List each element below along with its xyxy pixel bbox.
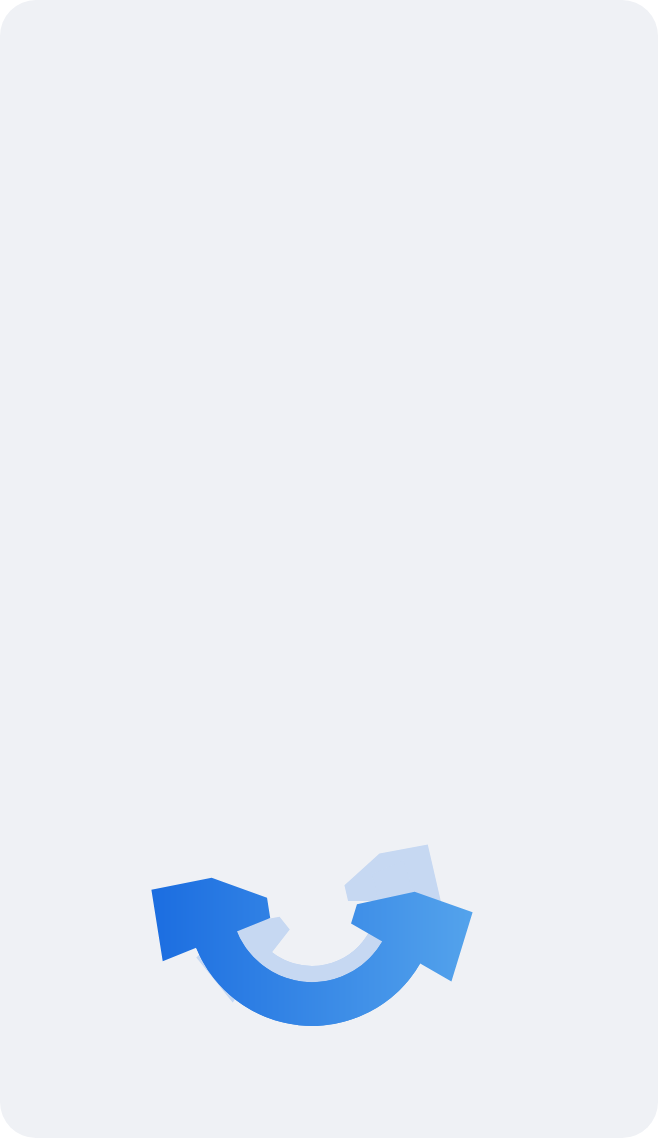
button[interactable]: Sync in progress [0,0,658,1138]
